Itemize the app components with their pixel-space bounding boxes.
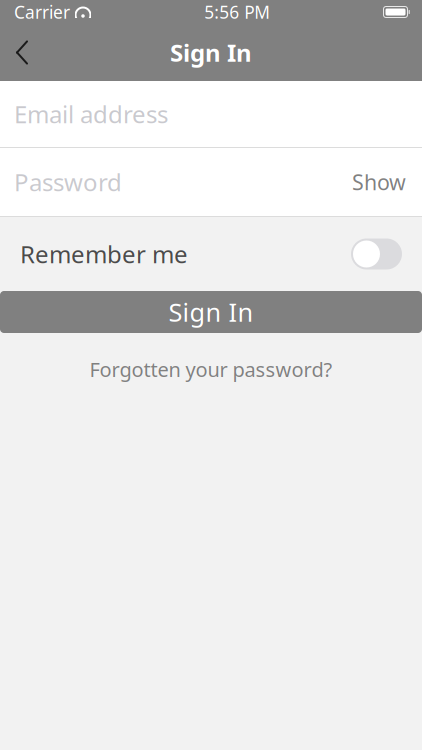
button[interactable]: Password [0,148,336,216]
button[interactable]: Show [336,148,422,216]
button[interactable]: Remember me [0,217,422,291]
staticText: Forgotten your password? [89,356,332,383]
button[interactable]: Sign In [0,291,422,333]
staticText: Show [352,168,406,196]
staticText: Remember me [20,238,188,270]
staticText: Sign In [168,295,253,329]
button[interactable]: Back [0,30,44,74]
staticText: Email address [14,98,168,130]
staticText: Carrier [14,0,70,23]
button[interactable]: Forgotten your password? [69,342,352,397]
button[interactable]: Email address [0,81,422,147]
staticText: Sign In [170,37,252,68]
staticText: 5:56 PM [204,0,270,23]
staticText: Password [14,166,122,198]
